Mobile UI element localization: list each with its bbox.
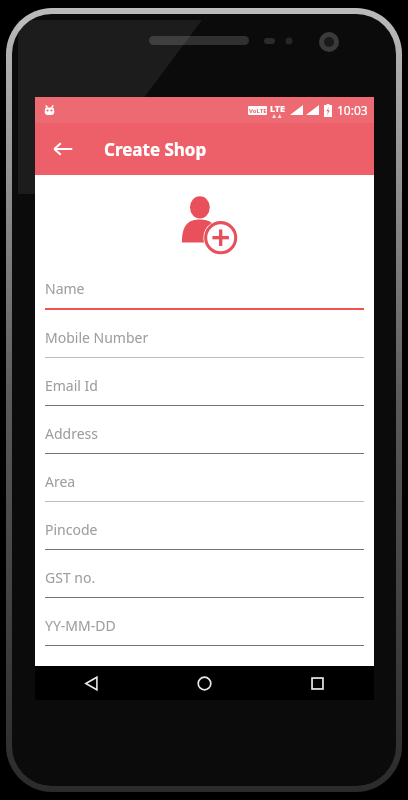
staticText: Area <box>45 472 76 491</box>
staticText: LTE <box>270 102 286 114</box>
button[interactable]: YY-MM-DD <box>45 605 364 653</box>
staticText: VoLTE <box>249 107 267 115</box>
button[interactable]: Back <box>43 129 83 169</box>
staticText: Name <box>45 279 85 298</box>
button[interactable]: Area <box>45 461 364 509</box>
staticText: Mobile Number <box>45 328 149 347</box>
staticText: Address <box>45 424 98 443</box>
button[interactable]: Mobile Number <box>45 317 364 365</box>
button[interactable]: Name <box>45 268 364 317</box>
button[interactable]: Address <box>45 413 364 461</box>
button[interactable]: Home <box>148 666 261 700</box>
staticText: Pincode <box>45 520 98 539</box>
staticText: YY-MM-DD <box>45 616 116 635</box>
button[interactable]: Email Id <box>45 365 364 413</box>
staticText: GST no. <box>45 568 96 587</box>
button[interactable]: Add shop photo <box>173 190 237 254</box>
button[interactable]: Back <box>35 666 148 700</box>
staticText: Create Shop <box>104 138 207 161</box>
button[interactable]: GST no. <box>45 557 364 605</box>
staticText: Email Id <box>45 376 98 395</box>
staticText: 10:03 <box>337 102 368 118</box>
button[interactable]: Recent apps <box>261 666 374 700</box>
button[interactable]: Pincode <box>45 509 364 557</box>
